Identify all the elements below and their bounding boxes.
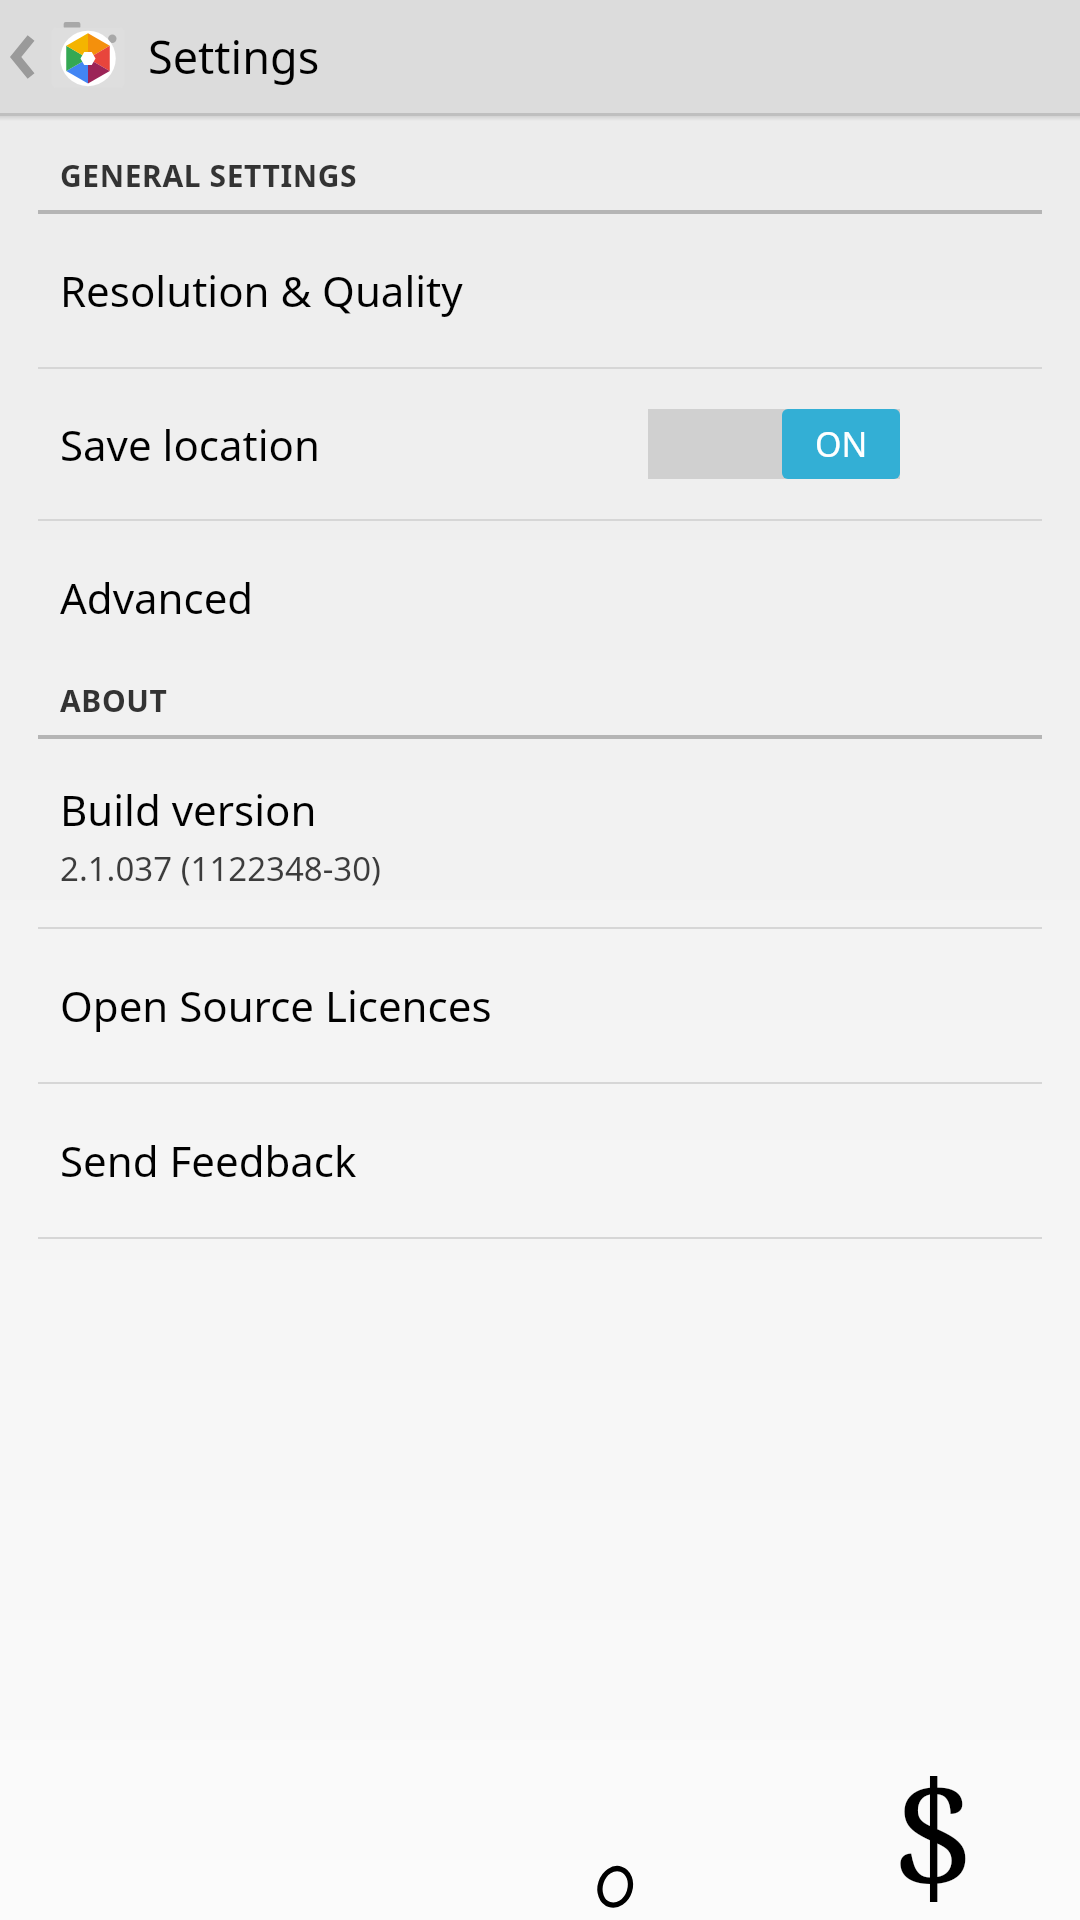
staticText: Build version	[60, 781, 317, 838]
button[interactable]: Back	[0, 0, 48, 113]
button[interactable]: Advanced	[0, 521, 1080, 666]
button[interactable]: Build version	[0, 739, 1080, 927]
staticText: Open Source Licences	[60, 977, 492, 1034]
button[interactable]: Open Source Licences	[0, 929, 1080, 1082]
button[interactable]: Send Feedback	[0, 1084, 1080, 1237]
staticText: $	[892, 1730, 976, 1920]
staticText: Save location	[60, 416, 320, 473]
staticText: ON	[815, 421, 868, 467]
button[interactable]: Save location	[0, 369, 1080, 519]
staticText: GENERAL SETTINGS	[60, 155, 358, 196]
staticText: ABOUT	[60, 680, 168, 721]
staticText: 2.1.037 (1122348-30)	[60, 846, 381, 891]
staticText: Settings	[148, 26, 320, 87]
staticText: Send Feedback	[60, 1132, 357, 1189]
staticText: Resolution & Quality	[60, 262, 463, 319]
button[interactable]: Resolution & Quality	[0, 214, 1080, 367]
staticText: Advanced	[60, 569, 254, 626]
